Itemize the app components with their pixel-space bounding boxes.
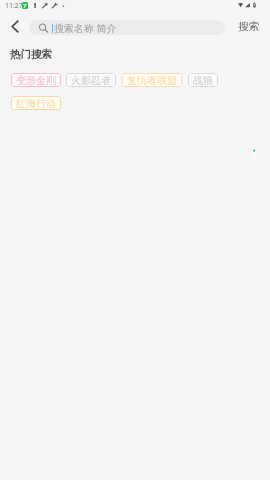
button[interactable]: Status indicator [250, 147, 258, 163]
staticText: 复仇者联盟 [127, 74, 177, 87]
staticText: 变形金刚 [16, 74, 56, 87]
button[interactable]: Back [4, 15, 26, 37]
staticText: 战狼 [193, 74, 213, 87]
staticText: 红海行动 [16, 97, 56, 110]
button[interactable]: 搜索名称 简介 [29, 20, 225, 35]
staticText: 火影忍者 [71, 74, 111, 87]
button[interactable]: 复仇者联盟 [122, 73, 182, 87]
staticText: 搜索 [238, 20, 260, 34]
button[interactable]: 战狼 [188, 73, 218, 87]
staticText: 11:27 [5, 1, 23, 10]
button[interactable]: 搜索 [230, 16, 266, 37]
button[interactable]: 红海行动 [11, 96, 61, 110]
button[interactable]: 变形金刚 [11, 73, 61, 87]
staticText: 搜索名称 简介 [54, 21, 117, 35]
staticText: 热门搜索 [10, 48, 52, 61]
button[interactable]: 火影忍者 [66, 73, 116, 87]
staticText: 7 [23, 2, 27, 9]
